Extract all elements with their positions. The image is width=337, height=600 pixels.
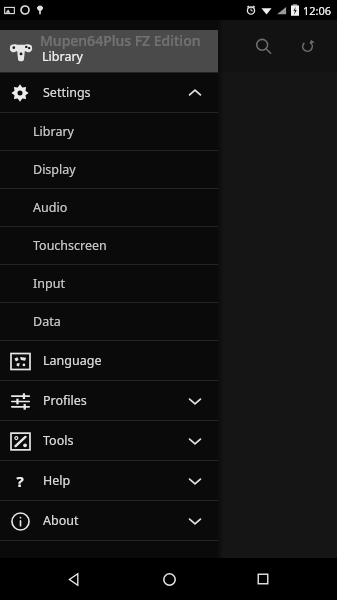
button[interactable]: Mupen64Plus FZ Edition [0, 30, 218, 72]
button[interactable]: Tools [0, 421, 218, 460]
button[interactable]: Data [0, 303, 218, 340]
staticText: ? [16, 471, 24, 491]
button[interactable]: Recent apps [242, 558, 284, 600]
button[interactable]: Library [0, 113, 218, 150]
staticText: Tools [43, 432, 74, 449]
button[interactable]: About [0, 501, 218, 540]
staticText: Library [33, 123, 74, 140]
button[interactable]: Settings [0, 73, 218, 112]
staticText: Display [33, 161, 76, 178]
staticText: 12:06 [303, 3, 332, 18]
button[interactable]: Refresh [285, 24, 329, 68]
button[interactable]: ? [0, 461, 218, 500]
button[interactable]: Home [148, 558, 190, 600]
button[interactable]: Display [0, 151, 218, 188]
staticText: About [43, 512, 79, 529]
staticText: Profiles [43, 392, 87, 409]
staticText: Library [42, 48, 83, 65]
button[interactable]: Touchscreen [0, 227, 218, 264]
staticText: Data [33, 313, 61, 330]
staticText: Settings [43, 84, 91, 101]
button[interactable]: Audio [0, 189, 218, 226]
staticText: Mupen64Plus FZ Edition [40, 31, 201, 50]
button[interactable]: Search [241, 24, 285, 68]
staticText: Language [43, 352, 102, 369]
button[interactable]: Back [53, 558, 95, 600]
staticText: Touchscreen [33, 237, 107, 254]
button[interactable]: Profiles [0, 381, 218, 420]
staticText: Audio [33, 199, 68, 216]
button[interactable]: Input [0, 265, 218, 302]
staticText: Help [43, 472, 71, 489]
button[interactable]: Language [0, 341, 218, 380]
staticText: Input [33, 275, 65, 292]
